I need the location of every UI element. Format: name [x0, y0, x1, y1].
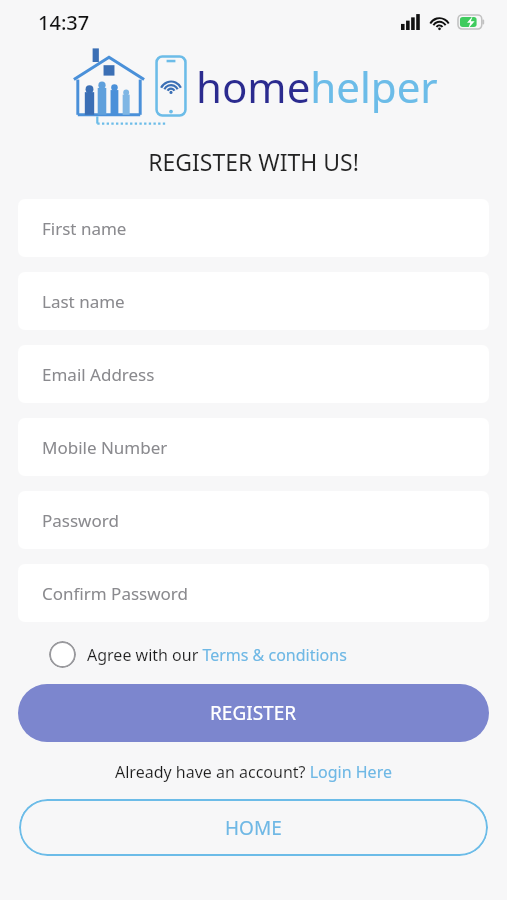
staticText: HOME: [225, 815, 282, 841]
button[interactable]: Already have an account? Login Here: [115, 761, 392, 783]
staticText: homehelper: [196, 58, 438, 115]
staticText: First name: [42, 217, 127, 240]
button[interactable]: REGISTER: [18, 684, 489, 742]
staticText: Email Address: [42, 363, 155, 386]
staticText: Agree with our Terms & conditions: [87, 644, 347, 666]
button[interactable]: Confirm Password: [18, 564, 489, 622]
staticText: REGISTER WITH US!: [0, 146, 507, 177]
button[interactable]: Agree with our Terms & conditions: [18, 641, 489, 668]
button[interactable]: Password: [18, 491, 489, 549]
staticText: Last name: [42, 290, 125, 313]
button[interactable]: HOME: [19, 799, 488, 856]
staticText: 14:37: [38, 9, 90, 36]
staticText: Mobile Number: [42, 436, 168, 459]
button[interactable]: First name: [18, 199, 489, 257]
button[interactable]: Email Address: [18, 345, 489, 403]
staticText: Password: [42, 509, 119, 532]
button[interactable]: Mobile Number: [18, 418, 489, 476]
button[interactable]: Last name: [18, 272, 489, 330]
staticText: REGISTER: [210, 700, 297, 726]
staticText: Confirm Password: [42, 582, 188, 605]
